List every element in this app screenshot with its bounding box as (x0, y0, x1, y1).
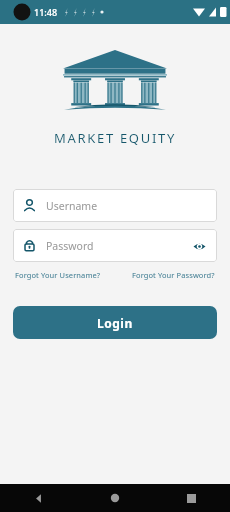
staticText: Password (46, 239, 190, 253)
button[interactable]: Recent apps (153, 484, 230, 512)
staticText: 11:48 (34, 6, 58, 18)
button[interactable]: Forgot Your Password? (132, 269, 215, 281)
button[interactable]: Home (76, 484, 153, 512)
button[interactable]: Login (13, 306, 217, 339)
button[interactable]: Username (13, 189, 217, 222)
button[interactable]: Forgot Your Username? (15, 269, 101, 281)
staticText: Forgot Your Password? (132, 270, 215, 280)
staticText: Username (46, 199, 208, 213)
button[interactable]: Show password (190, 237, 208, 255)
staticText: MARKET EQUITY (0, 129, 230, 147)
button[interactable]: Password (13, 229, 217, 262)
button[interactable]: Back (0, 484, 76, 512)
staticText: Login (97, 315, 133, 331)
staticText: Forgot Your Username? (15, 270, 101, 280)
